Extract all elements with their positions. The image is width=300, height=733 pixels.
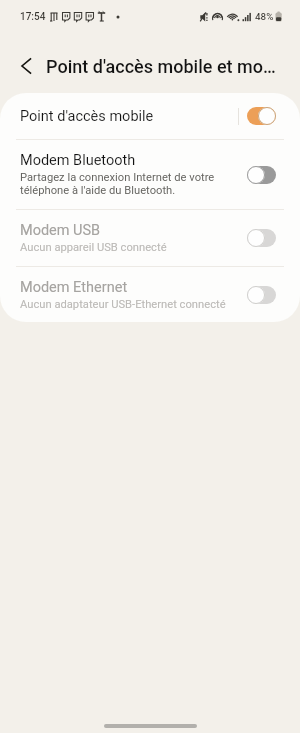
button[interactable]: Off <box>247 166 276 184</box>
staticText: Aucun appareil USB connecté <box>20 241 167 254</box>
staticText: Partagez la connexion Internet de votre … <box>20 171 215 197</box>
button[interactable]: Modem Bluetooth <box>0 140 300 209</box>
staticText: Point d'accès mobile <box>20 108 154 125</box>
staticText: 48% <box>255 11 274 22</box>
staticText: Modem Ethernet <box>20 279 128 296</box>
staticText: 17:54 <box>20 11 46 23</box>
button[interactable]: Point d'accès mobile <box>0 93 300 139</box>
button[interactable]: Modem USB <box>0 210 300 266</box>
button[interactable]: Off <box>247 286 276 304</box>
staticText: Modem Bluetooth <box>20 152 136 169</box>
button[interactable]: On <box>247 107 276 125</box>
button[interactable]: Off <box>247 229 276 247</box>
button[interactable]: Modem Ethernet <box>0 267 300 322</box>
button[interactable]: Back <box>10 50 42 82</box>
staticText: Point d'accès mobile et mo… <box>46 56 276 77</box>
staticText: Modem USB <box>20 222 101 239</box>
staticText: Aucun adaptateur USB-Ethernet connecté <box>20 298 226 311</box>
